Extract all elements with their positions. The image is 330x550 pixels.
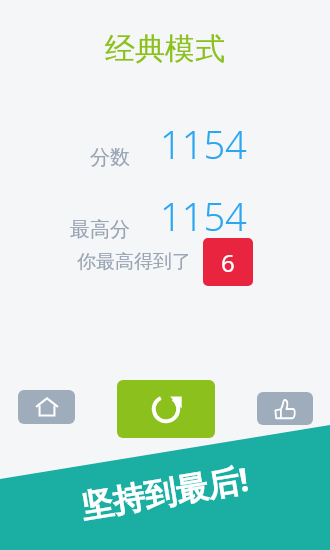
staticText: 1154 xyxy=(160,118,247,170)
staticText: 最高分 xyxy=(70,217,130,242)
staticText: 你最高得到了 xyxy=(77,250,191,274)
staticText: 6 xyxy=(221,246,235,279)
button[interactable]: Home xyxy=(18,390,75,424)
staticText: 坚持到最后! xyxy=(78,457,252,527)
button[interactable]: Restart xyxy=(117,380,215,438)
staticText: 分数 xyxy=(90,145,130,170)
staticText: 经典模式 xyxy=(105,30,225,68)
staticText: 1154 xyxy=(160,190,247,242)
button[interactable]: Like xyxy=(257,392,313,425)
